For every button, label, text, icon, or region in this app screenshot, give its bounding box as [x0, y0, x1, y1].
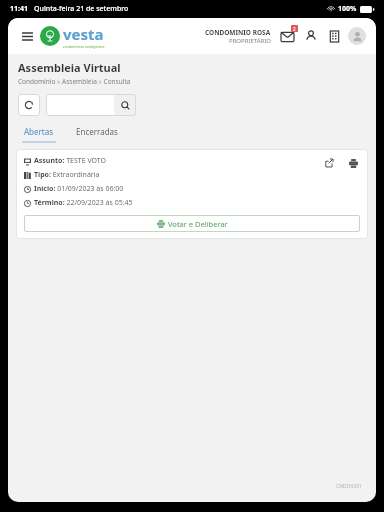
staticText: Assembleia Virtual	[18, 60, 121, 75]
staticText: Condomínio » Assembleia » Consulta	[18, 77, 131, 86]
staticText: Término: 22/09/2023 às 05:45	[34, 198, 133, 208]
staticText: CONDOMINIO ROSA	[205, 28, 271, 37]
staticText: condomínios inteligentes	[63, 44, 105, 49]
button[interactable]	[46, 94, 114, 116]
staticText: 11:41	[10, 4, 28, 14]
button[interactable]: Conta	[348, 27, 366, 45]
button[interactable]: Menu	[18, 27, 36, 45]
button[interactable]: Encerradas	[72, 126, 122, 137]
staticText: PROPRIETÁRIO	[229, 37, 271, 45]
staticText: CNDO9201	[336, 483, 362, 490]
staticText: Início: 01/09/2023 às 06:00	[34, 184, 124, 194]
button[interactable]: Abertas	[18, 126, 60, 143]
button[interactable]: Imprimir	[346, 156, 360, 170]
staticText: vesta	[63, 24, 104, 44]
button[interactable]: Condomínio	[325, 27, 343, 45]
staticText: 100%	[338, 4, 357, 14]
staticText: Votar e Deliberar	[168, 219, 228, 229]
staticText: Encerradas	[76, 126, 118, 137]
button[interactable]: Votar e Deliberar	[24, 215, 360, 232]
button[interactable]: Pesquisar	[114, 94, 136, 116]
staticText: Quinta-feira 21 de setembro	[34, 4, 129, 14]
button[interactable]: Atualizar	[18, 94, 40, 116]
staticText: Assunto: TESTE VOTO	[34, 156, 107, 166]
staticText: Abertas	[24, 126, 54, 137]
button[interactable]: Editar	[322, 156, 336, 170]
button[interactable]: Perfil	[302, 27, 320, 45]
staticText: Tipo: Extraordinária	[34, 170, 100, 180]
button[interactable]: Mensagens	[277, 26, 297, 46]
staticText: 2	[293, 26, 296, 32]
